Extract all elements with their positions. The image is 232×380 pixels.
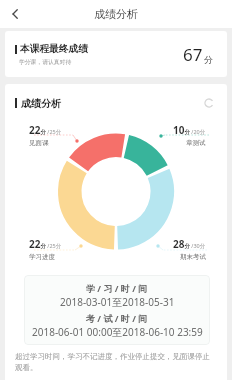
staticText: 成绩分析 <box>21 97 61 110</box>
staticText: 学分课，请认真对待 <box>19 58 72 65</box>
staticText: 学 / 习 / 时 / 间 <box>86 282 148 294</box>
staticText: 成绩分析 <box>94 7 138 21</box>
staticText: 分 <box>204 54 213 65</box>
staticText: 见面课 <box>29 139 49 147</box>
staticText: 本课程最终成绩 <box>20 43 88 55</box>
button[interactable]: Back <box>0 0 30 28</box>
staticText: 学习进度 <box>29 253 55 261</box>
staticText: 章测试 <box>186 139 206 147</box>
button[interactable]: Refresh <box>201 95 217 111</box>
staticText: 22分 /25分 <box>29 123 62 137</box>
staticText: 2018-03-01至2018-05-31 <box>60 295 175 309</box>
staticText: 期末考试 <box>180 253 206 261</box>
staticText: 22分 /25分 <box>29 237 62 251</box>
staticText: 67 <box>183 43 203 66</box>
button[interactable]: 本课程最终成绩 <box>5 31 227 77</box>
staticText: 考 / 试 / 时 / 间 <box>86 312 148 324</box>
staticText: 28分 /30分 <box>173 237 206 251</box>
staticText: 超过学习时间，学习不记进度，作业停止提交，见面课停止观看。 <box>15 352 215 372</box>
staticText: 10分 /20分 <box>173 123 206 137</box>
staticText: 2018-06-01 00:00至2018-06-10 23:59 <box>32 325 203 339</box>
